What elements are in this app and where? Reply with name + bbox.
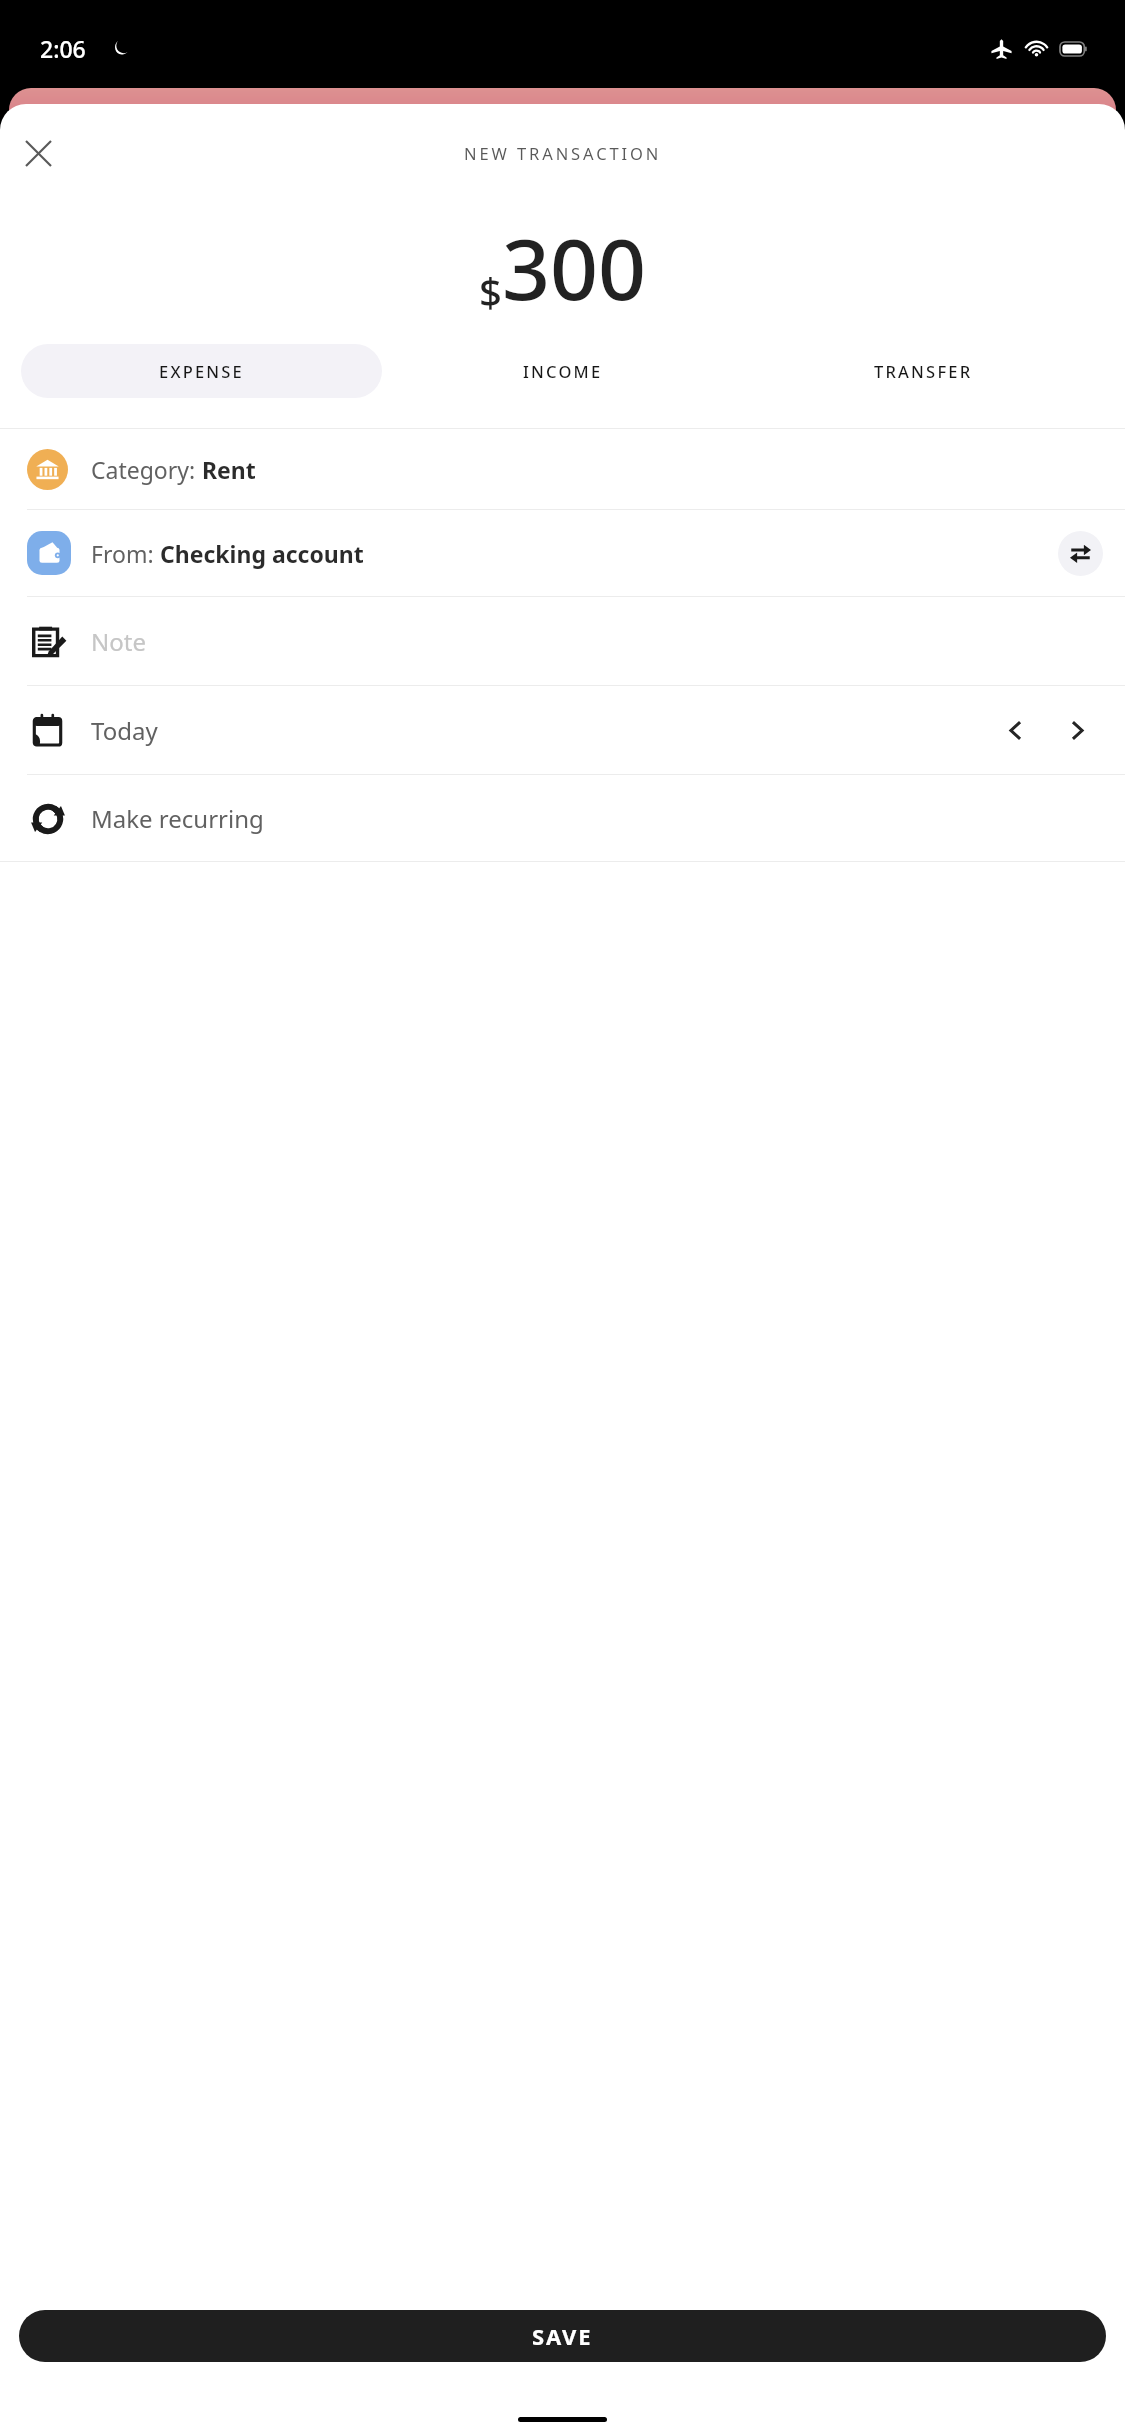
button[interactable]: SAVE xyxy=(19,2310,1106,2362)
staticText: NEW TRANSACTION xyxy=(464,142,662,164)
button[interactable]: Previous day xyxy=(991,706,1039,754)
staticText: Make recurring xyxy=(91,802,264,835)
button[interactable]: Category: xyxy=(0,429,1125,509)
staticText: Today xyxy=(91,714,158,747)
button[interactable]: Note xyxy=(0,597,1125,685)
button[interactable]: Today xyxy=(0,686,1125,774)
staticText: SAVE xyxy=(532,2321,593,2351)
staticText: Rent xyxy=(202,454,256,485)
button[interactable]: INCOME xyxy=(382,344,743,398)
button[interactable]: Swap accounts xyxy=(1058,531,1103,576)
staticText: $ xyxy=(479,264,502,318)
staticText: TRANSFER xyxy=(874,360,973,382)
button[interactable]: Next day xyxy=(1053,706,1101,754)
button[interactable]: TRANSFER xyxy=(743,344,1104,398)
staticText: Note xyxy=(91,625,146,658)
staticText: EXPENSE xyxy=(159,360,244,382)
button[interactable]: Close xyxy=(12,127,64,179)
button[interactable]: Make recurring xyxy=(0,775,1125,861)
staticText: 2:06 xyxy=(40,33,86,64)
button[interactable]: From: xyxy=(0,510,1125,596)
button[interactable]: EXPENSE xyxy=(21,344,382,398)
staticText: From: xyxy=(91,538,160,569)
staticText: Category: xyxy=(91,454,202,485)
staticText: 300 xyxy=(502,210,647,324)
staticText: INCOME xyxy=(523,360,603,382)
staticText: Checking account xyxy=(160,538,364,569)
